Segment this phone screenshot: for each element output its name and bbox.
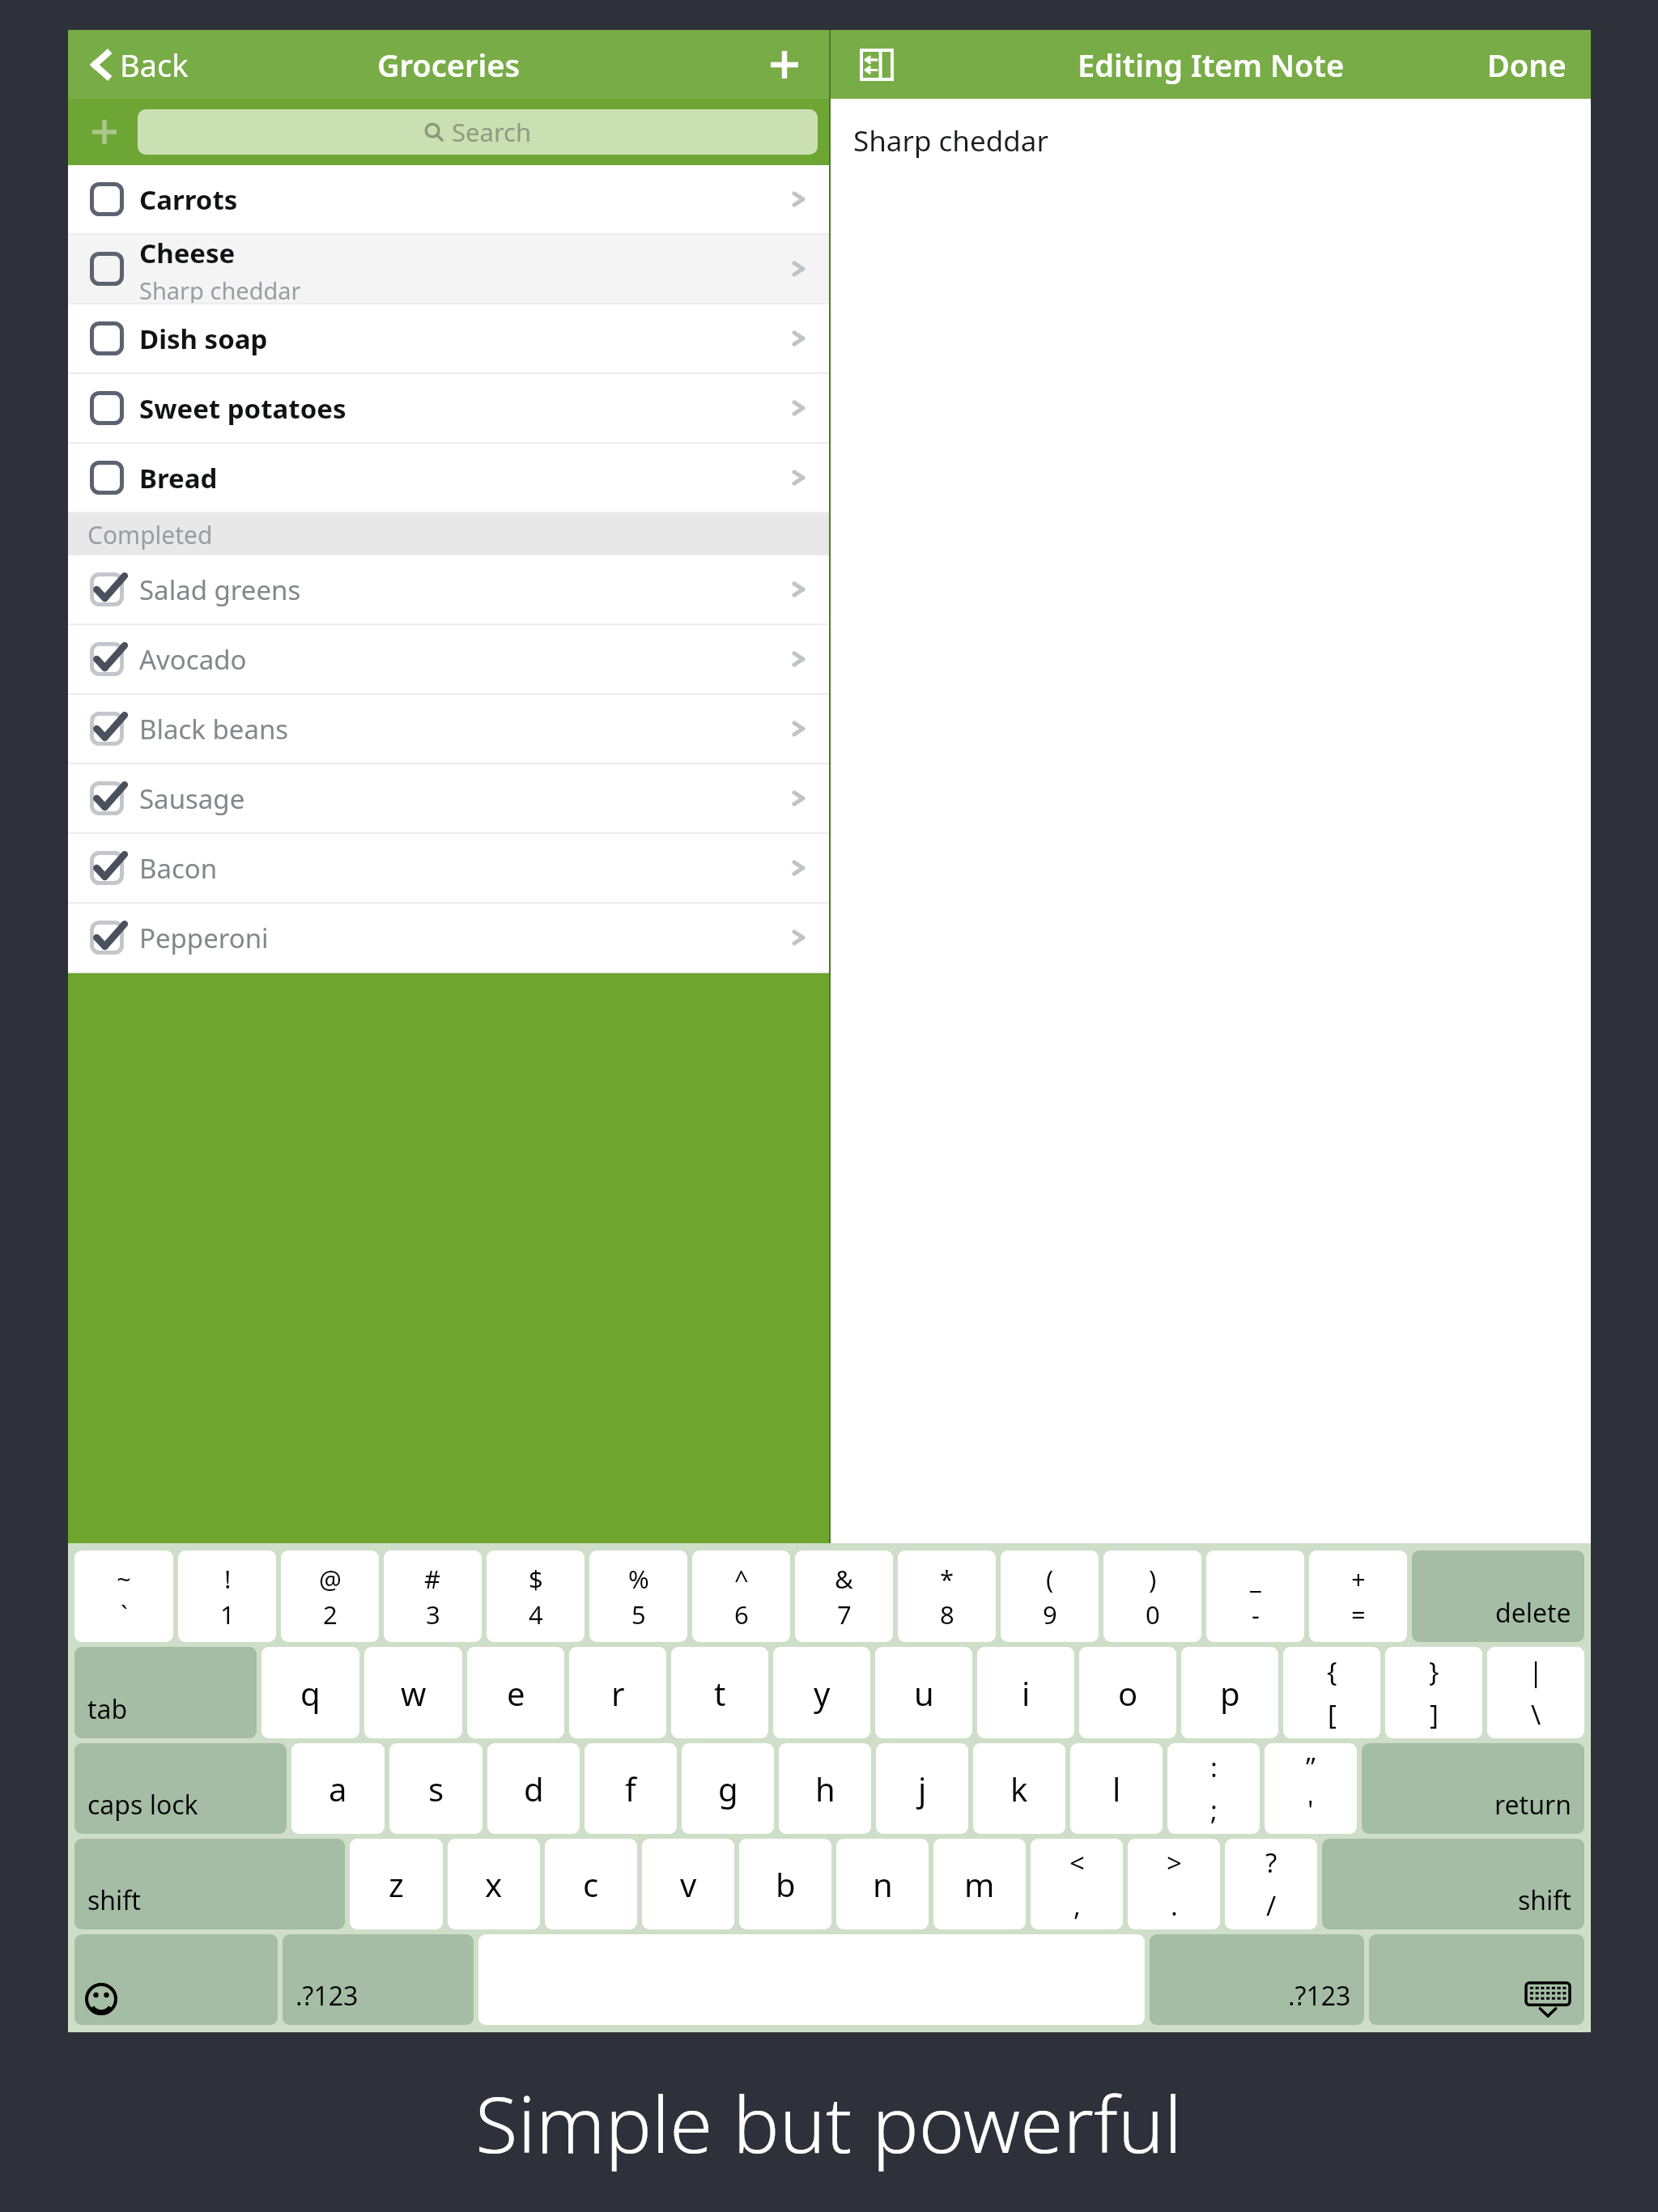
button[interactable]: Check Cheese <box>68 235 829 304</box>
staticText: i <box>1022 1671 1031 1715</box>
button[interactable]: Emoji <box>74 1934 278 2025</box>
button[interactable]: _ <box>1206 1551 1304 1642</box>
button[interactable]: Back <box>86 37 193 92</box>
button[interactable]: v <box>642 1839 734 1929</box>
button[interactable]: } <box>1385 1647 1482 1738</box>
button[interactable]: ! <box>178 1551 276 1642</box>
staticText: | <box>1528 1653 1544 1690</box>
button[interactable]: z <box>350 1839 443 1929</box>
button[interactable]: i <box>977 1647 1074 1738</box>
button[interactable]: + <box>1309 1551 1407 1642</box>
button[interactable]: shift <box>1322 1839 1584 1929</box>
button[interactable]: Done <box>1477 36 1576 94</box>
staticText: Sharp cheddar <box>853 121 1048 160</box>
button[interactable]: Check Carrots <box>86 178 128 220</box>
button[interactable]: & <box>795 1551 893 1642</box>
button[interactable]: Add item <box>755 35 814 95</box>
staticText: ] <box>1430 1696 1439 1733</box>
button[interactable]: Uncheck Avocado <box>68 625 829 695</box>
button[interactable]: Check Bread <box>86 457 128 499</box>
button[interactable]: ( <box>1001 1551 1099 1642</box>
button[interactable]: Hide keyboard <box>1369 1934 1584 2025</box>
button[interactable]: s <box>389 1743 483 1834</box>
button[interactable]: k <box>973 1743 1065 1834</box>
button[interactable]: delete <box>1412 1551 1584 1642</box>
button[interactable]: y <box>773 1647 870 1738</box>
button[interactable]: l <box>1070 1743 1163 1834</box>
button[interactable]: c <box>545 1839 637 1929</box>
button[interactable] <box>478 1934 1145 2025</box>
button[interactable]: Toggle sidebar <box>850 38 903 91</box>
button[interactable]: ? <box>1225 1839 1317 1929</box>
staticText: Sweet potatoes <box>139 390 346 427</box>
button[interactable]: Uncheck Sausage <box>86 777 128 819</box>
button[interactable]: o <box>1079 1647 1176 1738</box>
button[interactable]: Uncheck Black beans <box>68 695 829 764</box>
button[interactable]: Check Bread <box>68 444 829 513</box>
staticText: g <box>718 1767 738 1810</box>
button[interactable]: > <box>1128 1839 1220 1929</box>
button[interactable]: f <box>585 1743 677 1834</box>
button[interactable]: Uncheck Bacon <box>86 847 128 889</box>
staticText: { <box>1327 1653 1337 1690</box>
button[interactable]: m <box>933 1839 1026 1929</box>
button[interactable]: r <box>569 1647 666 1738</box>
button[interactable]: # <box>384 1551 482 1642</box>
button[interactable]: Add <box>79 107 130 157</box>
button[interactable]: * <box>898 1551 996 1642</box>
button[interactable]: ^ <box>692 1551 790 1642</box>
button[interactable]: d <box>487 1743 580 1834</box>
staticText: n <box>873 1862 893 1906</box>
button[interactable]: Check Carrots <box>68 165 829 235</box>
button[interactable]: .?123 <box>283 1934 474 2025</box>
staticText: Bread <box>139 460 218 496</box>
button[interactable]: Search <box>138 109 818 155</box>
button[interactable]: x <box>448 1839 540 1929</box>
button[interactable]: < <box>1031 1839 1123 1929</box>
button[interactable]: caps lock <box>74 1743 287 1834</box>
button[interactable]: | <box>1487 1647 1584 1738</box>
button[interactable]: w <box>364 1647 462 1738</box>
button[interactable]: Uncheck Black beans <box>86 708 128 750</box>
button[interactable]: t <box>671 1647 768 1738</box>
button[interactable]: n <box>836 1839 929 1929</box>
button[interactable]: Check Dish soap <box>68 304 829 374</box>
button[interactable]: Uncheck Sausage <box>68 764 829 834</box>
button[interactable]: Uncheck Salad greens <box>68 555 829 625</box>
button[interactable]: shift <box>74 1839 345 1929</box>
button[interactable]: p <box>1181 1647 1278 1738</box>
button[interactable]: Uncheck Pepperoni <box>68 904 829 973</box>
button[interactable]: ~ <box>74 1551 173 1642</box>
button[interactable]: % <box>589 1551 687 1642</box>
button[interactable]: Check Cheese <box>86 248 128 290</box>
staticText: - <box>1252 1597 1260 1631</box>
button[interactable]: { <box>1283 1647 1380 1738</box>
button[interactable]: Check Sweet potatoes <box>86 387 128 429</box>
button[interactable]: Uncheck Pepperoni <box>86 917 128 959</box>
button[interactable]: tab <box>74 1647 257 1738</box>
button[interactable]: Sharp cheddar <box>831 99 1591 1543</box>
staticText: Bacon <box>139 850 218 887</box>
button[interactable]: e <box>467 1647 564 1738</box>
button[interactable]: j <box>876 1743 968 1834</box>
button[interactable]: $ <box>487 1551 585 1642</box>
button[interactable]: g <box>682 1743 774 1834</box>
button[interactable]: ) <box>1103 1551 1201 1642</box>
button[interactable]: h <box>779 1743 871 1834</box>
button[interactable]: Check Sweet potatoes <box>68 374 829 444</box>
button[interactable]: : <box>1167 1743 1260 1834</box>
button[interactable]: ” <box>1265 1743 1357 1834</box>
button[interactable]: u <box>875 1647 972 1738</box>
button[interactable]: Uncheck Bacon <box>68 834 829 904</box>
button[interactable]: @ <box>281 1551 379 1642</box>
staticText: : <box>1210 1749 1218 1785</box>
button[interactable]: b <box>739 1839 831 1929</box>
button[interactable]: Uncheck Avocado <box>86 638 128 680</box>
staticText: a <box>329 1767 347 1810</box>
button[interactable]: a <box>291 1743 385 1834</box>
button[interactable]: q <box>261 1647 359 1738</box>
button[interactable]: Check Dish soap <box>86 317 128 359</box>
button[interactable]: return <box>1362 1743 1584 1834</box>
button[interactable]: Uncheck Salad greens <box>86 568 128 610</box>
button[interactable]: .?123 <box>1150 1934 1364 2025</box>
